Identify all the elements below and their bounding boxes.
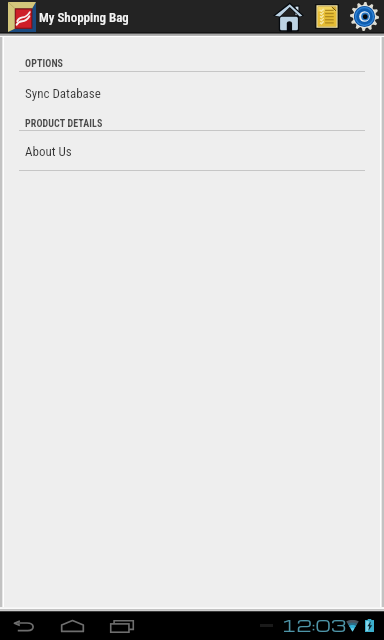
button[interactable]: Shopping list <box>308 0 345 33</box>
staticText: PRODUCT DETAILS <box>25 118 103 130</box>
button[interactable]: Back <box>10 612 38 640</box>
button[interactable]: Settings <box>346 0 382 33</box>
staticText: 12:03 <box>281 613 347 636</box>
button[interactable]: Home <box>58 612 86 640</box>
staticText: About Us <box>25 144 72 159</box>
staticText: Sync Database <box>25 86 101 101</box>
button[interactable]: Home <box>269 0 307 33</box>
staticText: My Shopping Bag <box>39 10 129 25</box>
button[interactable]: Recent apps <box>108 612 136 640</box>
button[interactable]: Sync Database <box>0 81 384 105</box>
staticText: OPTIONS <box>25 58 64 70</box>
button[interactable]: About Us <box>0 139 384 163</box>
